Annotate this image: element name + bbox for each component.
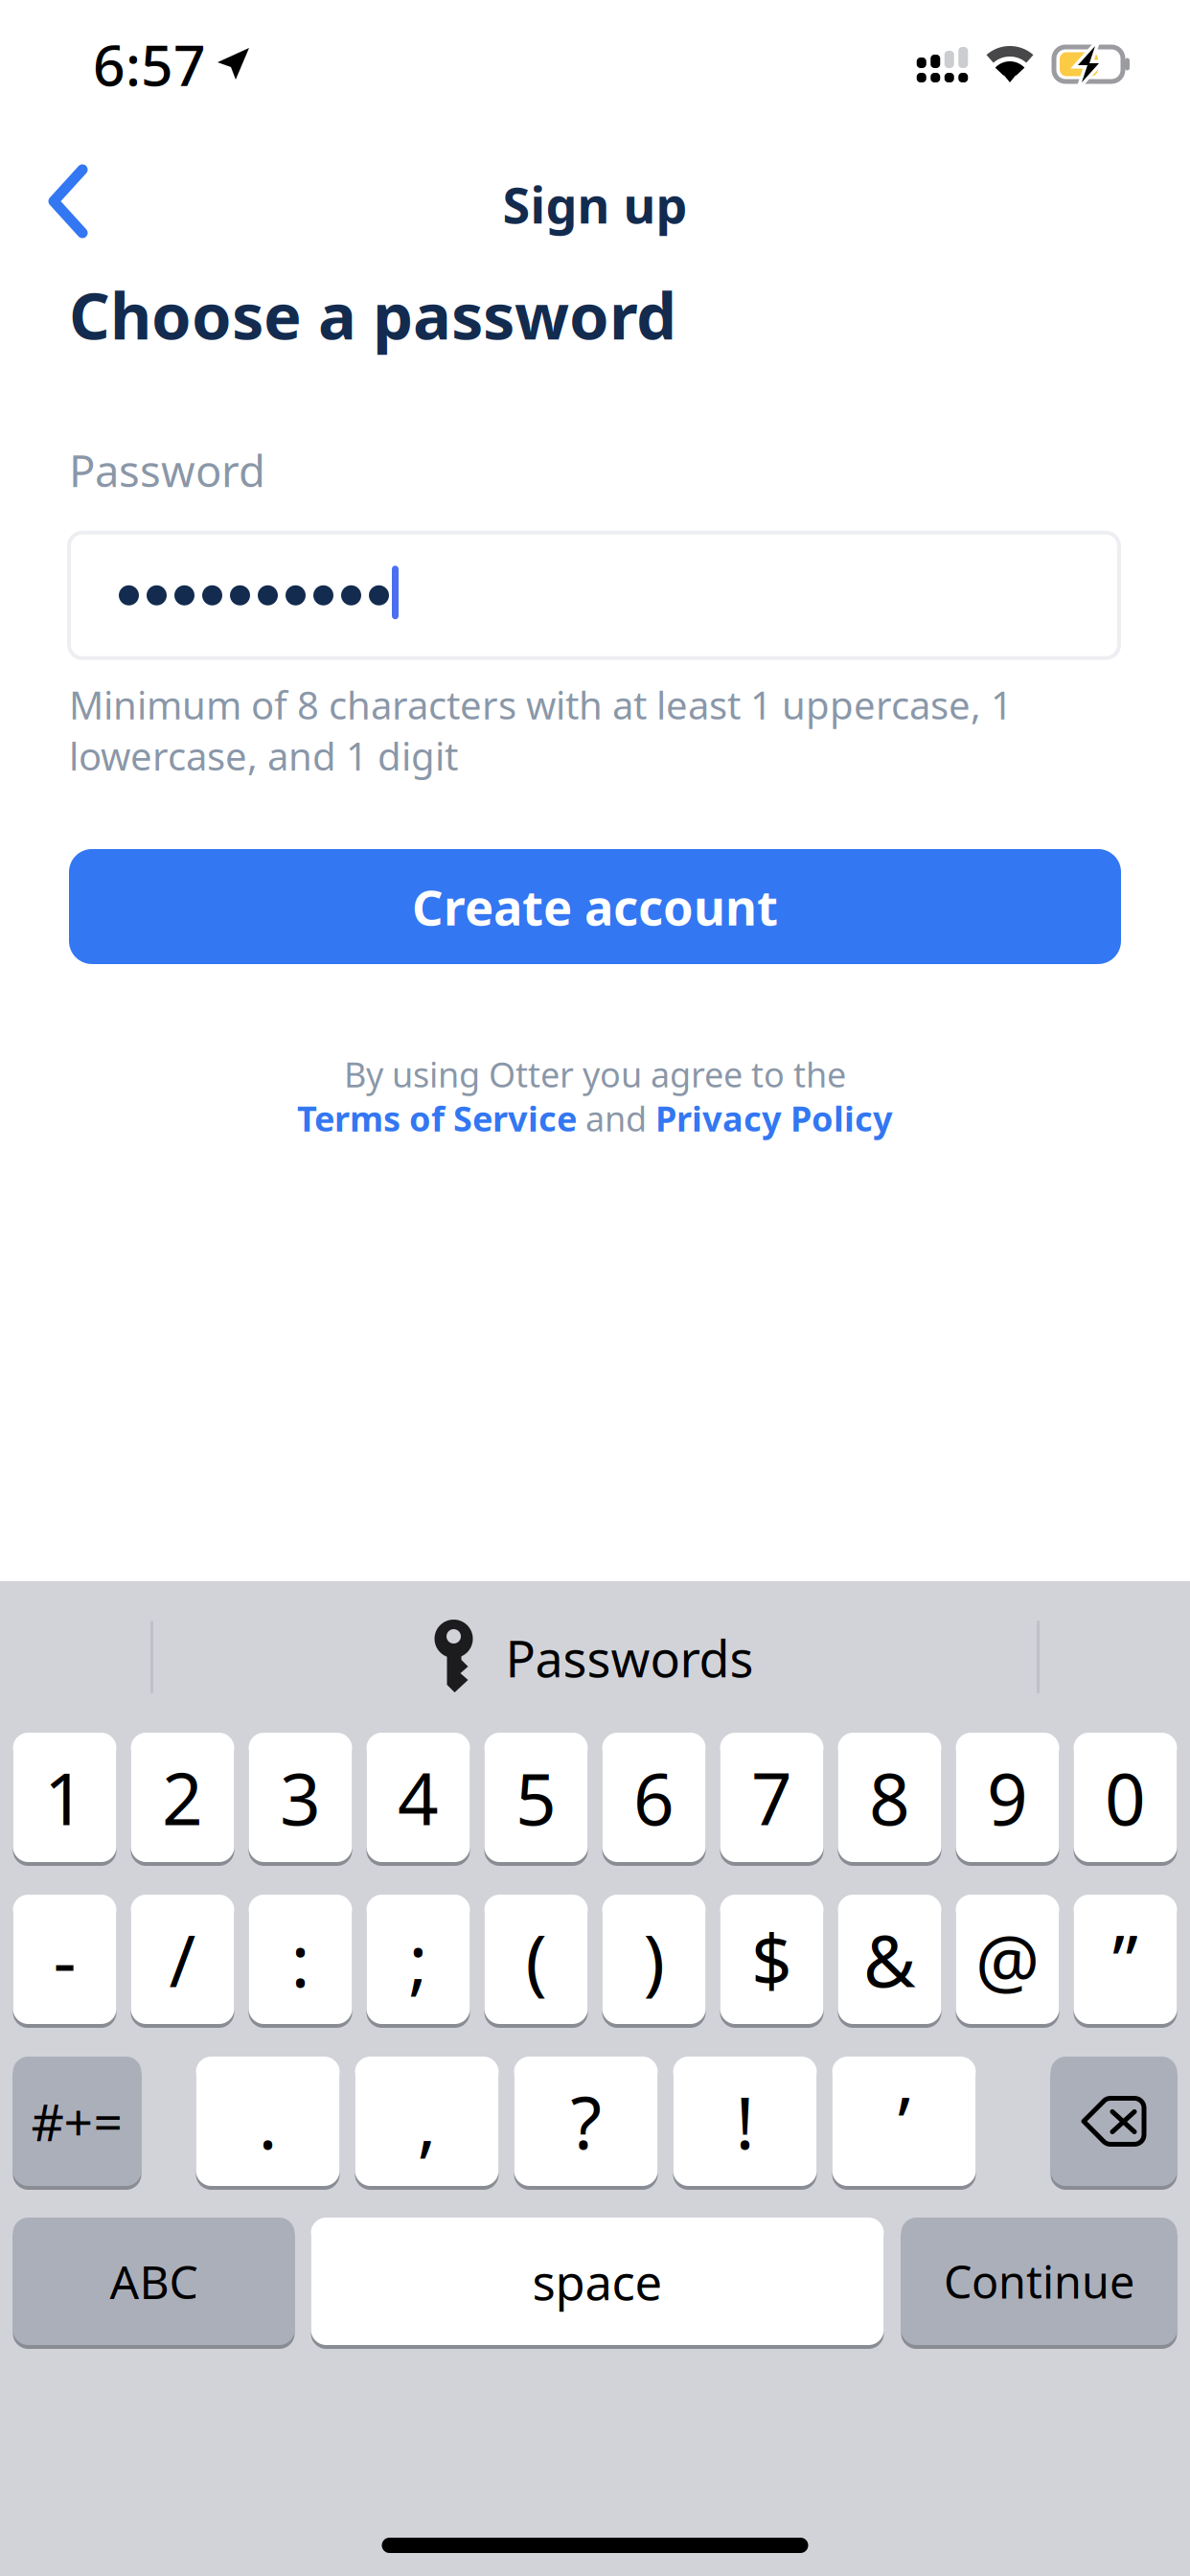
button[interactable]: 9	[956, 1733, 1059, 1862]
button[interactable]: @	[956, 1895, 1059, 2024]
button[interactable]: :	[249, 1895, 352, 2024]
button[interactable]: 4	[366, 1733, 470, 1862]
button[interactable]: ?	[514, 2057, 658, 2186]
staticText: ;	[409, 1912, 428, 2007]
staticText: and	[577, 1095, 655, 1141]
staticText: /	[169, 1912, 196, 2007]
staticText: 9	[987, 1750, 1028, 1845]
button[interactable]: Passwords	[405, 1599, 785, 1714]
staticText: -	[53, 1912, 76, 2007]
button[interactable]: ’	[832, 2057, 976, 2186]
button[interactable]: Continue	[901, 2218, 1177, 2345]
staticText: 5	[515, 1750, 557, 1845]
staticText: 4	[398, 1750, 439, 1845]
button[interactable]: 2	[131, 1733, 234, 1862]
button[interactable]: Back	[0, 111, 134, 257]
button[interactable]: 6	[602, 1733, 706, 1862]
button[interactable]: .	[196, 2057, 340, 2186]
staticText: 8	[869, 1750, 910, 1845]
staticText: &	[863, 1912, 916, 2007]
staticText: @	[975, 1912, 1040, 2007]
staticText: ABC	[110, 2251, 198, 2312]
button[interactable]: 1	[13, 1733, 116, 1862]
staticText: :	[291, 1912, 310, 2007]
button[interactable]: !	[673, 2057, 817, 2186]
staticText: Create account	[412, 874, 778, 939]
button[interactable]: Privacy Policy	[655, 1095, 893, 1141]
staticText: 2	[162, 1750, 203, 1845]
button[interactable]: $	[720, 1895, 824, 2024]
staticText: (	[526, 1912, 547, 2007]
button[interactable]: ABC	[13, 2218, 295, 2345]
staticText: Privacy Policy	[655, 1095, 893, 1141]
button[interactable]: 3	[249, 1733, 352, 1862]
staticText: Sign up	[503, 171, 687, 237]
button[interactable]: space	[311, 2218, 884, 2345]
button[interactable]: ,	[355, 2057, 499, 2186]
button[interactable]: 5	[484, 1733, 588, 1862]
button[interactable]: (	[484, 1895, 588, 2024]
staticText: 3	[280, 1750, 321, 1845]
button[interactable]: 8	[838, 1733, 941, 1862]
staticText: By using Otter you agree to the	[344, 1051, 846, 1097]
button[interactable]: ”	[1074, 1895, 1177, 2024]
staticText: #+=	[31, 2087, 123, 2155]
staticText: 0	[1105, 1750, 1146, 1845]
staticText: $	[751, 1912, 792, 2007]
button[interactable]: #+=	[13, 2057, 141, 2186]
button[interactable]: /	[131, 1895, 234, 2024]
staticText: ’	[898, 2074, 910, 2169]
staticText: Passwords	[505, 1625, 754, 1691]
button[interactable]: 0	[1074, 1733, 1177, 1862]
staticText: ”	[1112, 1912, 1138, 2007]
staticText: Password	[69, 441, 265, 499]
button[interactable]: 7	[720, 1733, 824, 1862]
staticText: 7	[751, 1750, 792, 1845]
staticText: .	[258, 2074, 277, 2169]
staticText: ?	[571, 2074, 601, 2169]
staticText: )	[643, 1912, 664, 2007]
staticText: Continue	[944, 2252, 1134, 2311]
staticText: Terms of Service	[297, 1095, 577, 1141]
staticText: 6	[633, 1750, 675, 1845]
staticText: ,	[417, 2074, 436, 2169]
button[interactable]: ;	[366, 1895, 470, 2024]
button[interactable]: Delete	[1051, 2057, 1177, 2186]
button[interactable]: )	[602, 1895, 706, 2024]
button[interactable]: Create account	[69, 849, 1121, 964]
staticText: 6:57	[93, 27, 206, 101]
staticText: space	[532, 2249, 663, 2314]
staticText: Minimum of 8 characters with at least 1 …	[69, 679, 1013, 781]
staticText: 1	[44, 1750, 85, 1845]
staticText: !	[735, 2074, 755, 2169]
button[interactable]: &	[838, 1895, 941, 2024]
staticText: Choose a password	[69, 272, 676, 357]
button[interactable]: -	[13, 1895, 116, 2024]
button[interactable]: Terms of Service	[297, 1095, 577, 1141]
